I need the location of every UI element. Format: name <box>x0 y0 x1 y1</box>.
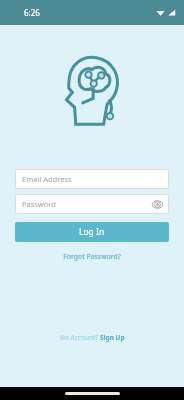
button[interactable]: Show password <box>151 198 164 211</box>
button[interactable]: Password <box>15 194 169 214</box>
staticText: Password <box>22 199 56 209</box>
staticText: Log In <box>79 226 105 238</box>
button[interactable]: Email Address <box>15 169 169 189</box>
staticText: 6:26 <box>24 7 40 18</box>
staticText: No Account? <box>60 333 100 342</box>
button[interactable]: No Account? <box>60 333 125 342</box>
button[interactable]: Forgot Password? <box>57 250 127 263</box>
staticText: Forgot Password? <box>63 252 121 261</box>
button[interactable]: Log In <box>15 222 169 242</box>
staticText: Sign Up <box>100 333 125 342</box>
staticText: Email Address <box>22 174 72 184</box>
